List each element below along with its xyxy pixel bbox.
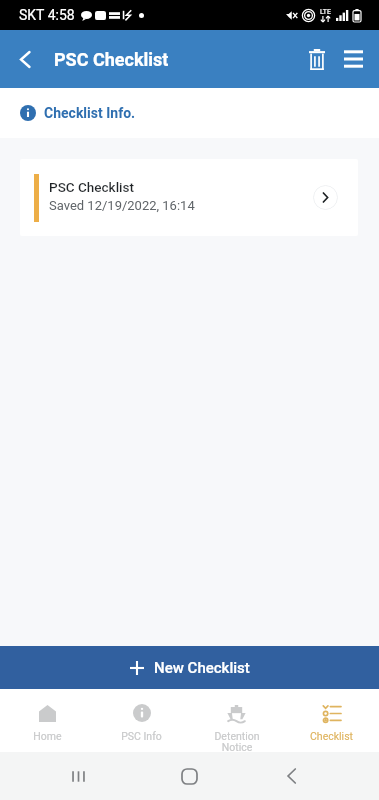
staticText: PSC Checklist [49,179,135,195]
button[interactable]: Menu [333,30,374,88]
staticText: PSC Checklist [54,49,169,70]
button[interactable]: PSC Info [94,689,189,752]
button[interactable]: Back [0,34,50,84]
staticText: SKT 4:58 [19,7,75,23]
staticText: LTE [320,8,331,16]
staticText: Checklist [310,730,353,742]
button[interactable]: New Checklist [0,646,379,689]
button[interactable]: Back [269,752,313,800]
button[interactable]: Home [0,689,94,752]
staticText: New Checklist [154,659,250,677]
button[interactable]: Detention Notice [189,689,284,752]
button[interactable]: Recents [56,752,100,800]
staticText: PSC Info [121,730,162,742]
button[interactable]: Home [167,752,211,800]
staticText: Checklist Info. [44,105,136,121]
button[interactable]: Checklist Info. [0,88,379,138]
button[interactable]: Checklist [284,689,379,752]
button[interactable]: Delete [291,30,333,88]
staticText: Home [33,730,62,742]
staticText: Detention Notice [214,730,260,752]
staticText: Saved 12/19/2022, 16:14 [49,198,195,213]
button[interactable]: Open checklist [313,185,338,210]
button[interactable]: PSC Checklist [20,159,358,236]
